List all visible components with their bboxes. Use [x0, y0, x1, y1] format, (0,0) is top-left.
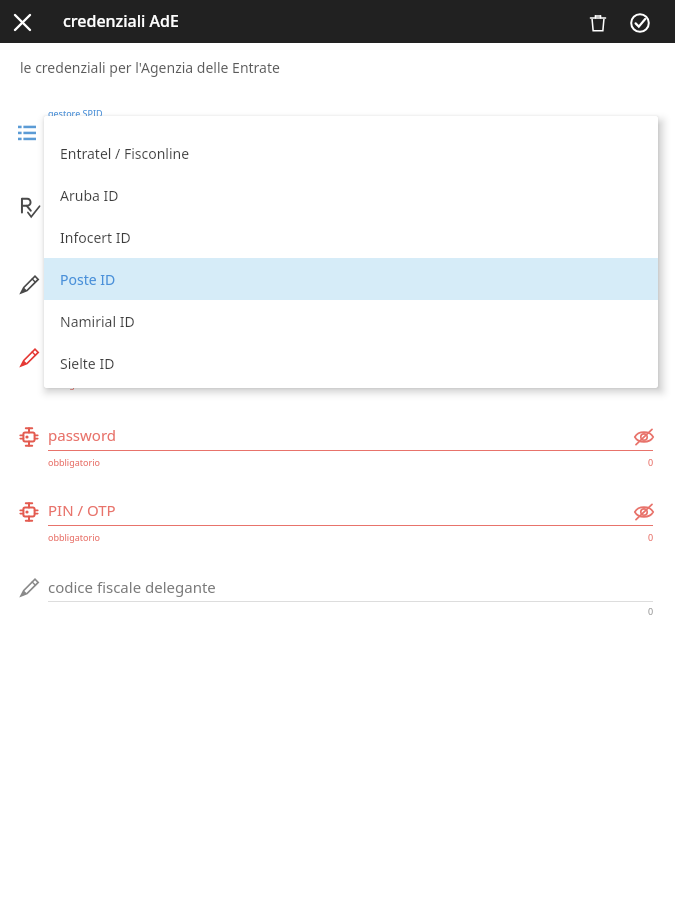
staticText: 0 [648, 605, 654, 617]
button[interactable]: Confirm [625, 8, 655, 38]
staticText: obbligatorio [48, 378, 100, 390]
staticText: gestore SPID [48, 107, 103, 119]
staticText: Namirial ID [60, 312, 135, 331]
button[interactable]: Entratel / Fisconline [44, 132, 658, 174]
button[interactable]: Edit required [14, 343, 44, 373]
staticText: Poste ID [60, 270, 116, 289]
button[interactable]: Close [10, 10, 34, 34]
staticText: le credenziali per l'Agenzia delle Entra… [20, 58, 280, 77]
button[interactable]: Edit [14, 270, 44, 300]
staticText: 0 [648, 456, 654, 468]
staticText: 0 [648, 378, 654, 390]
button[interactable]: Password field [14, 497, 44, 527]
button[interactable]: Username [14, 193, 44, 223]
button[interactable]: Show password [628, 421, 660, 453]
button[interactable]: Delete [583, 8, 613, 38]
button[interactable]: password [48, 425, 116, 445]
button[interactable]: Show PIN [628, 496, 660, 528]
button[interactable]: Edit delegate code [14, 573, 44, 603]
staticText: obbligatorio [48, 531, 100, 543]
button[interactable]: PIN / OTP [48, 500, 116, 520]
button[interactable]: List [14, 120, 40, 146]
button[interactable]: Infocert ID [44, 216, 658, 258]
button[interactable]: Poste ID [44, 258, 658, 300]
button[interactable]: Namirial ID [44, 300, 658, 342]
button[interactable]: Password field [14, 422, 44, 452]
button[interactable]: Sielte ID [44, 342, 658, 384]
staticText: obbligatorio [48, 456, 100, 468]
button[interactable]: codice fiscale delegante [48, 577, 216, 597]
staticText: Sielte ID [60, 354, 115, 373]
staticText: 0 [648, 531, 654, 543]
staticText: credenziali AdE [63, 10, 179, 32]
staticText: Entratel / Fisconline [60, 144, 190, 163]
staticText: Infocert ID [60, 228, 131, 247]
button[interactable]: Aruba ID [44, 174, 658, 216]
staticText: Aruba ID [60, 186, 119, 205]
